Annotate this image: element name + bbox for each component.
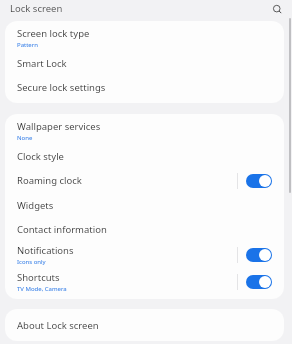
button[interactable]: Toggle on [246, 248, 272, 262]
staticText: Widgets [17, 199, 54, 212]
staticText: Screen lock type [17, 27, 90, 40]
button[interactable]: Smart Lock [5, 51, 284, 75]
button[interactable]: Toggle on [246, 275, 272, 289]
button[interactable]: Notifications [5, 241, 284, 268]
staticText: Smart Lock [17, 57, 67, 70]
staticText: Shortcuts [17, 271, 60, 284]
staticText: Pattern [17, 41, 38, 49]
staticText: Clock style [17, 150, 64, 163]
staticText: Icons only [17, 258, 46, 266]
button[interactable]: Wallpaper services [5, 118, 284, 144]
button[interactable]: Widgets [5, 193, 284, 217]
button[interactable]: Shortcuts [5, 268, 284, 295]
button[interactable]: Clock style [5, 144, 284, 168]
staticText: About Lock screen [17, 319, 99, 332]
staticText: Wallpaper services [17, 120, 101, 133]
staticText: TV Mode, Camera [17, 285, 67, 293]
button[interactable]: Screen lock type [5, 25, 284, 51]
button[interactable]: Secure lock settings [5, 75, 284, 99]
staticText: Roaming clock [17, 174, 82, 187]
button[interactable]: About Lock screen [5, 312, 284, 338]
staticText: Contact information [17, 223, 107, 236]
staticText: Notifications [17, 244, 74, 257]
button[interactable]: Contact information [5, 217, 284, 241]
staticText: Secure lock settings [17, 81, 106, 94]
staticText: Lock screen [10, 2, 270, 15]
staticText: None [17, 134, 33, 142]
button[interactable]: Roaming clock [5, 168, 284, 193]
button[interactable]: Toggle on [246, 174, 272, 188]
button[interactable]: Search [270, 2, 284, 16]
